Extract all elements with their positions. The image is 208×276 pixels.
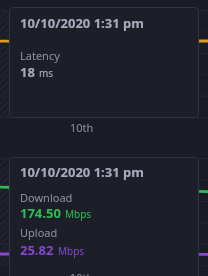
staticText: 10/10/2020 1:31 pm <box>20 14 144 32</box>
staticText: Mbps <box>65 207 92 221</box>
staticText: 10th <box>70 270 94 276</box>
staticText: Latency <box>20 48 60 63</box>
staticText: Mbps <box>58 244 85 258</box>
staticText: 25.82 <box>20 241 54 259</box>
staticText: 10/10/2020 1:31 pm <box>20 163 144 181</box>
button[interactable]: 10/10/2020 1:31 pm <box>9 157 199 276</box>
button[interactable]: 10/10/2020 1:31 pm <box>9 7 199 118</box>
staticText: 174.50 <box>20 204 61 222</box>
staticText: Upload <box>20 225 58 240</box>
staticText: 18 <box>20 63 35 81</box>
staticText: 10th <box>70 120 94 135</box>
staticText: Download <box>20 190 73 205</box>
staticText: ms <box>39 66 54 80</box>
